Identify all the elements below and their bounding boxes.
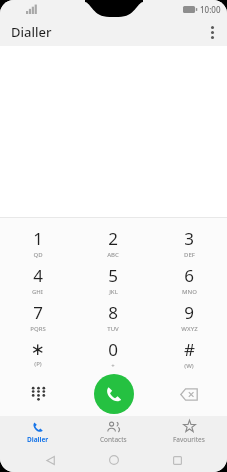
staticText: 4 xyxy=(33,264,43,287)
button[interactable]: 2 xyxy=(75,224,151,261)
button[interactable]: Back xyxy=(40,450,60,470)
staticText: 7 xyxy=(33,301,43,324)
staticText: GHI xyxy=(32,288,43,296)
staticText: (W) xyxy=(184,362,194,370)
staticText: Dialler xyxy=(27,435,49,444)
button[interactable]: Favourites xyxy=(151,416,227,448)
staticText: ∗ xyxy=(30,339,45,359)
button[interactable]: Recents xyxy=(167,450,187,470)
button[interactable]: More options xyxy=(201,21,223,43)
staticText: 10:00 xyxy=(200,4,221,15)
staticText: JKL xyxy=(109,288,118,296)
staticText: DEF xyxy=(184,251,195,259)
button[interactable]: 7 xyxy=(0,298,75,335)
button[interactable]: Call xyxy=(94,374,134,414)
staticText: 0 xyxy=(108,338,118,361)
button[interactable]: Home xyxy=(104,450,124,470)
staticText: 9 xyxy=(184,301,194,324)
button[interactable]: 3 xyxy=(151,224,227,261)
staticText: (P) xyxy=(34,360,42,368)
staticText: 3 xyxy=(184,227,194,250)
staticText: PQRS xyxy=(30,325,46,333)
button[interactable]: 1 xyxy=(0,224,75,261)
staticText: Favourites xyxy=(173,435,205,444)
staticText: MNO xyxy=(182,288,197,296)
staticText: 2 xyxy=(108,227,118,250)
staticText: 1 xyxy=(33,227,43,250)
staticText: QD xyxy=(33,251,43,259)
staticText: Contacts xyxy=(100,435,127,444)
button[interactable]: Backspace xyxy=(151,372,227,416)
button[interactable]: # xyxy=(151,335,227,372)
button[interactable]: Dialler xyxy=(0,416,75,448)
button[interactable]: 4 xyxy=(0,261,75,298)
button[interactable]: 0 xyxy=(75,335,151,372)
staticText: 5 xyxy=(108,264,118,287)
staticText: + xyxy=(111,362,115,370)
button[interactable]: 8 xyxy=(75,298,151,335)
staticText: Dialler xyxy=(11,23,52,41)
staticText: ABC xyxy=(107,251,119,259)
button[interactable]: 9 xyxy=(151,298,227,335)
button[interactable]: ∗ xyxy=(0,335,75,372)
button[interactable]: 5 xyxy=(75,261,151,298)
staticText: WXYZ xyxy=(181,325,198,333)
staticText: 8 xyxy=(108,301,118,324)
staticText: TUV xyxy=(107,325,119,333)
button[interactable]: Contacts xyxy=(75,416,151,448)
staticText: 6 xyxy=(184,264,194,287)
button[interactable]: Keypad xyxy=(0,372,76,416)
button[interactable]: 6 xyxy=(151,261,227,298)
staticText: # xyxy=(184,338,195,361)
